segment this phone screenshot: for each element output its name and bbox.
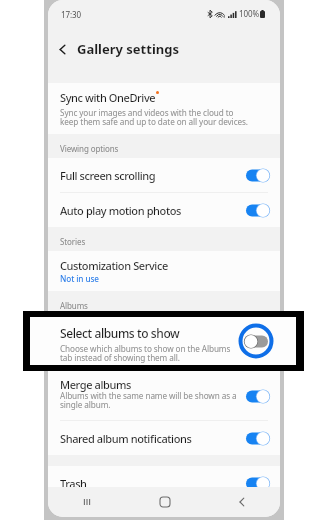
button[interactable]: Shared album notifications: [48, 421, 280, 455]
staticText: Auto play motion photos: [60, 203, 181, 218]
staticText: Customization Service: [60, 258, 168, 273]
staticText: Select albums to show: [60, 324, 169, 339]
staticText: 100%: [239, 8, 259, 19]
button[interactable]: Auto play motion photos: [48, 193, 280, 227]
staticText: Shared album notifications: [60, 431, 192, 446]
button[interactable]: Customization Service: [48, 251, 280, 291]
staticText: Albums with the same name will be shown …: [60, 390, 237, 411]
button[interactable]: Merge albums: [48, 371, 280, 421]
button[interactable]: Sync with OneDrive: [48, 83, 280, 134]
button[interactable]: Select albums to show: [48, 315, 280, 371]
staticText: Select albums to show: [60, 325, 180, 341]
staticText: Gallery settings: [77, 40, 179, 58]
staticText: Trash: [60, 476, 87, 491]
staticText: Sync with OneDrive: [60, 90, 156, 105]
button[interactable]: Back: [203, 487, 280, 517]
staticText: Viewing options: [60, 143, 119, 154]
staticText: Stories: [60, 236, 86, 247]
staticText: Full screen scrolling: [60, 168, 156, 183]
staticText: Albums: [60, 300, 88, 311]
staticText: Choose which albums to show on the Album…: [60, 337, 231, 358]
button[interactable]: Trash: [48, 466, 280, 500]
button[interactable]: Full screen scrolling: [48, 158, 280, 193]
staticText: Sync your images and videos with the clo…: [60, 107, 248, 128]
staticText: Not in use: [60, 273, 99, 284]
button[interactable]: Select albums to show: [238, 323, 274, 359]
button[interactable]: Home: [126, 487, 203, 517]
staticText: Merge albums: [60, 377, 131, 392]
button[interactable]: Navigate up: [48, 32, 77, 66]
button[interactable]: Recent apps: [48, 487, 126, 517]
staticText: Choose which albums to show on the Album…: [60, 343, 231, 364]
staticText: 17:30: [61, 9, 81, 20]
